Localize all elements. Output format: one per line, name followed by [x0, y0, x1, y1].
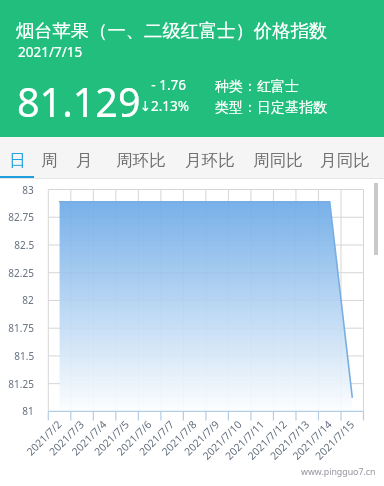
staticText: 周环比: [116, 150, 166, 171]
button[interactable]: 周环比: [114, 144, 168, 177]
staticText: 81.129: [17, 75, 141, 129]
staticText: 种类：红富士: [215, 78, 299, 96]
staticText: 月环比: [185, 150, 235, 171]
staticText: - 1.76: [128, 76, 186, 94]
staticText: 月: [76, 150, 93, 171]
staticText: 烟台苹果（一、二级红富士）价格指数: [16, 19, 328, 42]
button[interactable]: 月同比: [318, 144, 372, 177]
button[interactable]: 周同比: [251, 144, 305, 177]
staticText: 2021/7/15: [18, 43, 83, 61]
staticText: 月同比: [320, 150, 370, 171]
staticText: 周同比: [253, 150, 303, 171]
button[interactable]: 周: [40, 144, 58, 177]
button[interactable]: 月: [75, 144, 93, 177]
button[interactable]: 日: [8, 144, 26, 177]
staticText: ↓2.13%: [128, 97, 189, 115]
staticText: 周: [41, 150, 58, 171]
staticText: www.pingguo7.cn: [301, 466, 376, 478]
staticText: 类型：日定基指数: [215, 99, 327, 117]
staticText: 日: [9, 150, 26, 171]
button[interactable]: 月环比: [183, 144, 237, 177]
